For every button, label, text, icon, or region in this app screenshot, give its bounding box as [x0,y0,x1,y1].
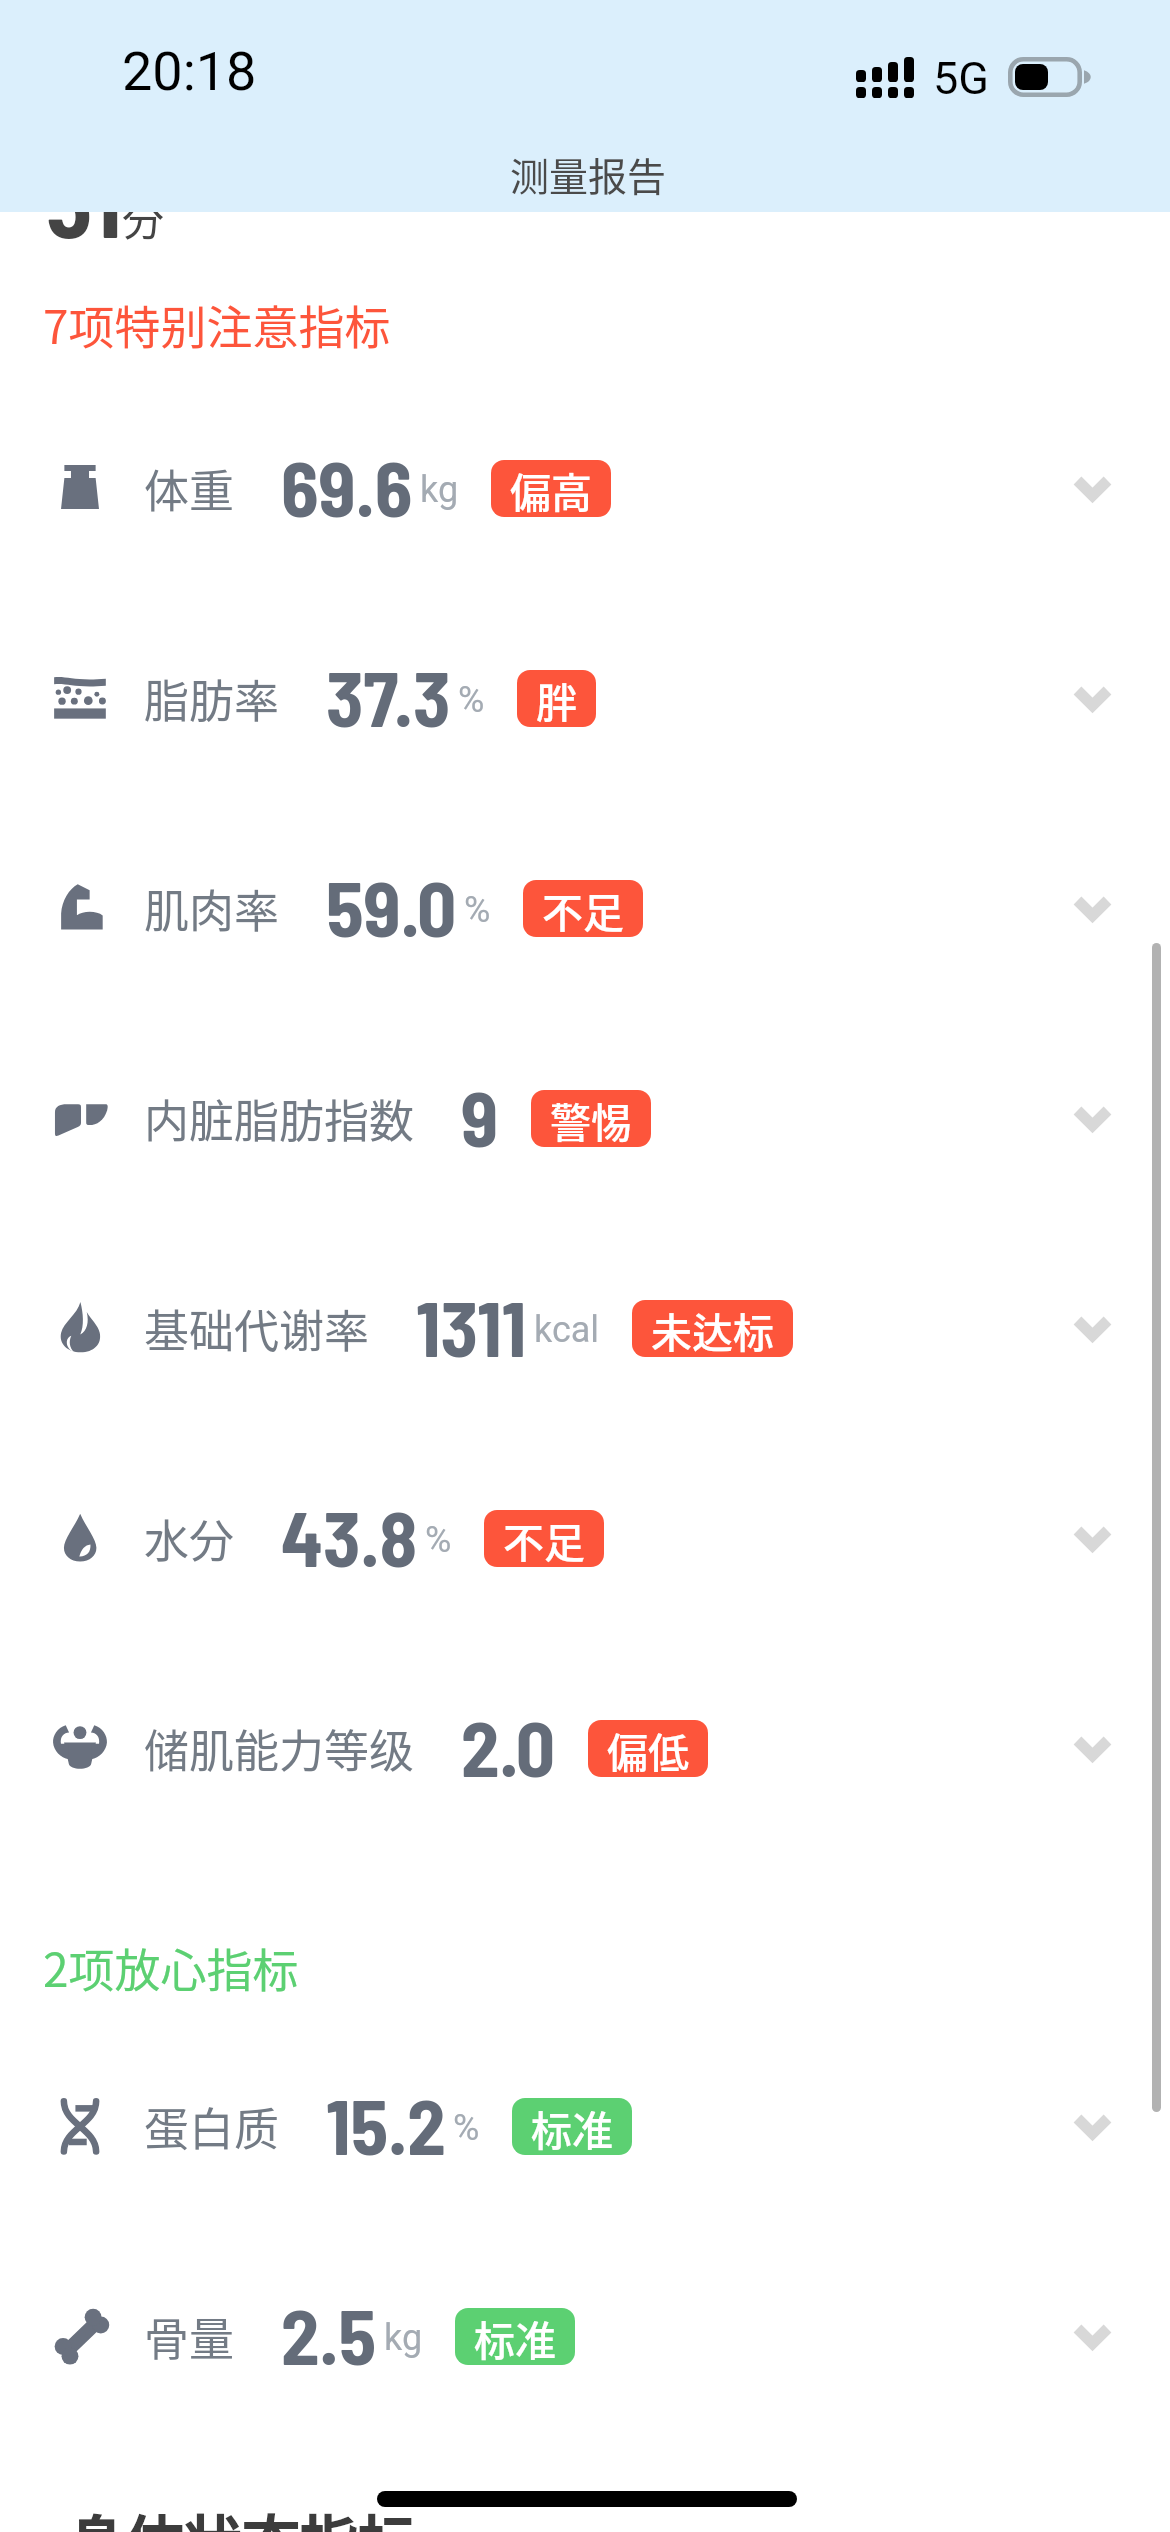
button[interactable]: 肌肉率 [0,803,1170,1013]
staticText: 胖 [536,670,577,727]
staticText: 1311 [416,1280,527,1372]
button[interactable]: 蛋白质 [0,2021,1170,2231]
staticText: 偏低 [607,1720,689,1777]
button[interactable]: 展开 [1042,648,1142,748]
staticText: 储肌能力等级 [144,1716,415,1781]
staticText: % [453,2107,480,2149]
button[interactable]: 展开 [1042,1278,1142,1378]
staticText: 2.5 [281,2288,377,2380]
staticText: 骨量 [144,2304,235,2369]
button[interactable]: 骨量 [0,2231,1170,2441]
button[interactable]: 基础代谢率 [0,1223,1170,1433]
button[interactable]: 展开 [1042,1488,1142,1588]
staticText: 7项特别注意指标 [43,291,391,358]
staticText: 2.0 [461,1700,556,1792]
staticText: 分 [122,187,165,248]
button[interactable]: 展开 [1042,1698,1142,1798]
staticText: 基础代谢率 [144,1296,370,1361]
staticText: 标准 [474,2308,556,2365]
button[interactable]: 展开 [1042,2076,1142,2176]
staticText: 69.6 [281,440,413,532]
staticText: 5G [933,52,989,105]
staticText: 水分 [144,1506,235,1571]
button[interactable]: 脂肪率 [0,593,1170,803]
staticText: 59.0 [326,860,457,952]
staticText: 2项放心指标 [43,1934,299,2001]
staticText: 身体状态指标 [68,2497,417,2532]
staticText: 未达标 [651,1300,774,1357]
staticText: 内脏脂肪指数 [144,1086,415,1151]
staticText: % [458,679,485,721]
button[interactable]: 展开 [1042,438,1142,538]
staticText: 43.8 [281,1490,418,1582]
button[interactable]: 水分 [0,1433,1170,1643]
staticText: 蛋白质 [144,2094,280,2159]
staticText: % [425,1519,452,1561]
staticText: 15.2 [326,2078,446,2170]
staticText: kg [420,469,459,511]
staticText: % [464,889,491,931]
button[interactable]: 内脏脂肪指数 [0,1013,1170,1223]
staticText: 测量报告 [510,146,667,202]
staticText: 37.3 [326,650,451,742]
staticText: 51 [45,142,122,257]
staticText: 不足 [542,880,624,937]
staticText: kcal [534,1309,600,1351]
staticText: 体重 [144,456,235,521]
staticText: 标准 [531,2098,613,2155]
staticText: 警惕 [550,1090,632,1147]
button[interactable]: 展开 [1042,858,1142,958]
button[interactable]: 储肌能力等级 [0,1643,1170,1853]
staticText: 脂肪率 [144,666,280,731]
staticText: 肌肉率 [144,876,280,941]
staticText: 9 [461,1070,499,1162]
button[interactable]: 展开 [1042,2286,1142,2386]
staticText: 20:18 [122,40,257,103]
button[interactable]: 体重 [0,383,1170,593]
staticText: kg [384,2317,423,2359]
button[interactable]: 展开 [1042,1068,1142,1168]
staticText: 偏高 [510,460,592,517]
staticText: 不足 [503,1510,585,1567]
